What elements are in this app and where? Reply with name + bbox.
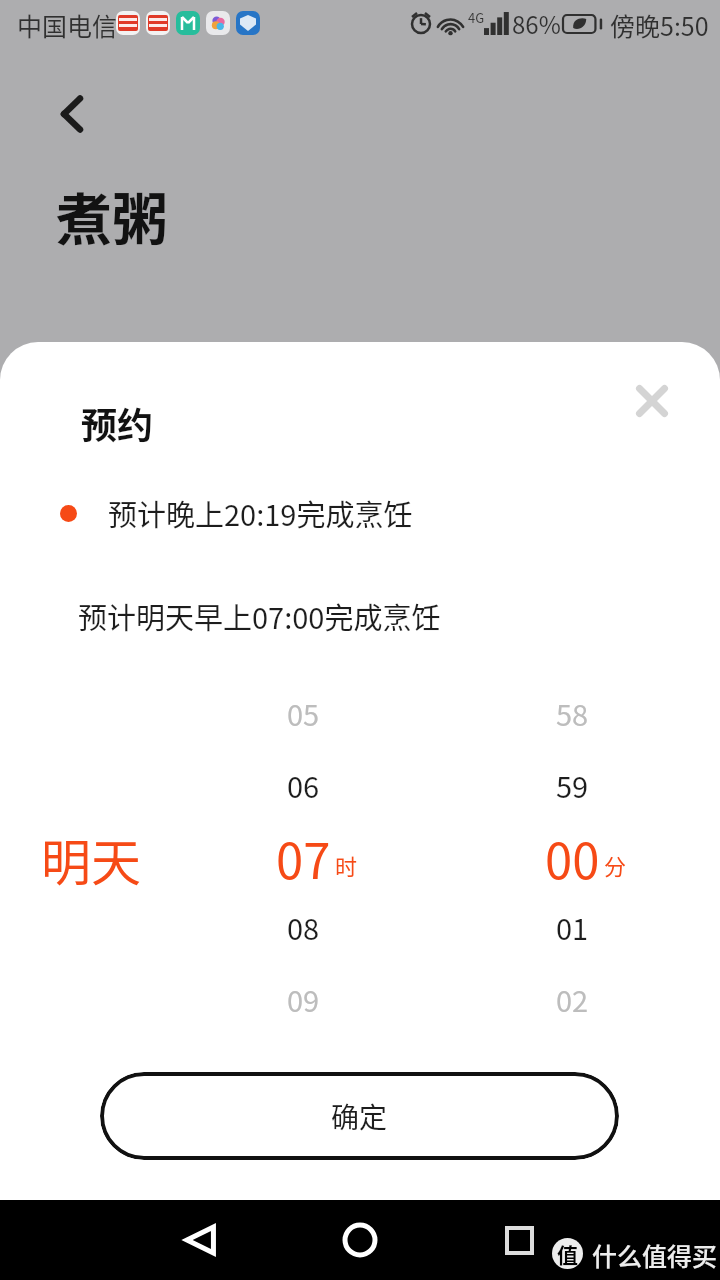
staticText: 傍晚5:50 — [610, 7, 709, 43]
staticText: 值 — [557, 1239, 578, 1269]
staticText: 明天 — [41, 823, 141, 895]
staticText: 什么值得买 — [592, 1237, 718, 1273]
staticText: 08 — [287, 906, 320, 948]
button[interactable]: 预计晚上20:19完成烹饪 — [0, 481, 720, 545]
staticText: 06 — [287, 764, 320, 806]
staticText: 00 — [545, 822, 600, 893]
staticText: 59 — [556, 764, 589, 806]
staticText: 05 — [287, 692, 320, 734]
staticText: 预约 — [81, 397, 154, 449]
staticText: 分 — [604, 849, 627, 879]
staticText: 07 — [276, 822, 331, 893]
staticText: 确定 — [331, 1096, 388, 1137]
staticText: 预计晚上20:19完成烹饪 — [108, 492, 413, 534]
button[interactable]: 预计明天早上07:00完成烹饪 — [0, 584, 720, 648]
button[interactable]: Back — [35, 77, 109, 151]
staticText: 86% — [512, 6, 561, 41]
button[interactable]: 确定 — [100, 1072, 619, 1160]
staticText: 02 — [556, 978, 589, 1020]
staticText: 58 — [556, 692, 589, 734]
staticText: 时 — [335, 849, 358, 879]
staticText: 中国电信 — [17, 7, 118, 43]
button[interactable]: Back — [170, 1210, 230, 1270]
button[interactable]: Home — [330, 1210, 390, 1270]
button[interactable]: Close — [612, 361, 692, 441]
staticText: 预计明天早上07:00完成烹饪 — [78, 595, 441, 637]
staticText: 煮粥 — [56, 175, 168, 256]
staticText: 09 — [287, 978, 320, 1020]
button[interactable]: Recents — [489, 1210, 549, 1270]
staticText: 01 — [556, 906, 589, 948]
staticText: 4G — [468, 8, 485, 27]
